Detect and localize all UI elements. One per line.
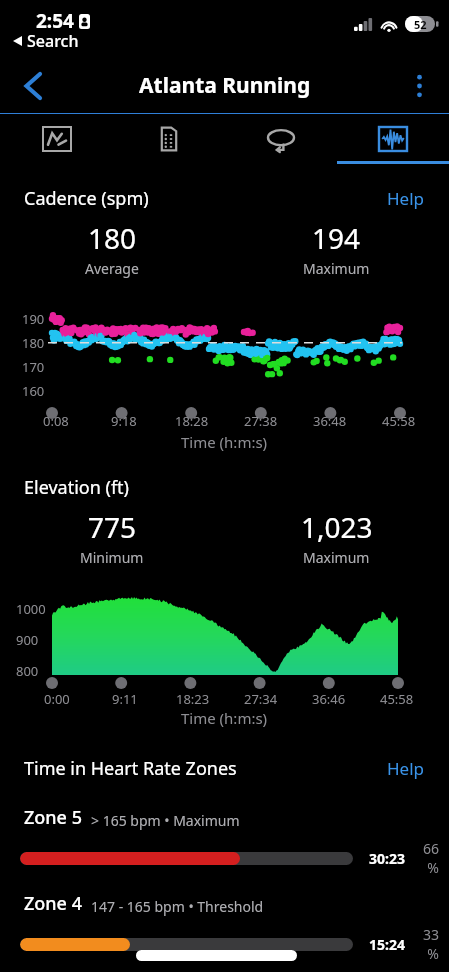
staticText: 15:24 [363, 935, 405, 954]
staticText: Time (h:m:s) [181, 432, 268, 452]
button[interactable]: Help [387, 757, 425, 780]
button[interactable]: Zone 5 [0, 805, 449, 877]
staticText: 27:34 [244, 690, 278, 708]
staticText: Zone 5 [24, 805, 82, 830]
staticText: 18:23 [176, 690, 210, 708]
staticText: 36:48 [313, 412, 347, 430]
staticText: 9:11 [112, 690, 138, 708]
staticText: 2:54 [36, 8, 74, 34]
staticText: 147 - 165 bpm • Threshold [91, 897, 264, 916]
button[interactable]: Help [387, 187, 425, 210]
staticText: 1000 [16, 600, 46, 618]
staticText: 45:58 [382, 412, 416, 430]
staticText: 66% [417, 839, 439, 877]
staticText: 900 [16, 631, 39, 649]
staticText: 180 [22, 334, 45, 352]
staticText: 9:18 [111, 412, 137, 430]
staticText: Help [387, 757, 425, 780]
staticText: 160 [22, 382, 45, 400]
staticText: 0:08 [43, 412, 69, 430]
staticText: 45:58 [380, 690, 414, 708]
staticText: 30:23 [363, 849, 405, 868]
staticText: Average [85, 259, 139, 278]
button[interactable]: Zone 4 [0, 891, 449, 963]
staticText: 1,023 [301, 508, 373, 546]
staticText: 800 [16, 662, 39, 680]
staticText: 18:28 [175, 412, 209, 430]
staticText: Atlanta Running [139, 71, 311, 100]
staticText: Elevation (ft) [24, 475, 130, 500]
button[interactable]: More options [397, 64, 441, 108]
staticText: 190 [22, 310, 45, 328]
staticText: 52 [414, 17, 427, 32]
staticText: > 165 bpm • Maximum [91, 811, 240, 830]
staticText: Cadence (spm) [24, 186, 149, 211]
staticText: Time (h:m:s) [181, 708, 268, 728]
staticText: 775 [88, 508, 137, 546]
staticText: Maximum [303, 548, 370, 567]
button[interactable]: Details [113, 114, 225, 164]
staticText: 194 [312, 219, 361, 257]
staticText: 170 [22, 358, 45, 376]
button[interactable]: Charts [337, 114, 449, 164]
staticText: Help [387, 187, 425, 210]
staticText: Minimum [80, 548, 144, 567]
staticText: 27:38 [244, 412, 278, 430]
staticText: Time in Heart Rate Zones [24, 756, 237, 781]
staticText: Maximum [303, 259, 370, 278]
button[interactable]: Laps [225, 114, 337, 164]
staticText: Zone 4 [24, 891, 82, 916]
staticText: 180 [88, 219, 137, 257]
button[interactable]: Map [0, 114, 113, 164]
staticText: Search [27, 30, 79, 52]
staticText: 33% [417, 925, 439, 963]
staticText: 0:00 [44, 690, 70, 708]
button[interactable]: Back [10, 64, 54, 108]
staticText: 36:46 [312, 690, 346, 708]
